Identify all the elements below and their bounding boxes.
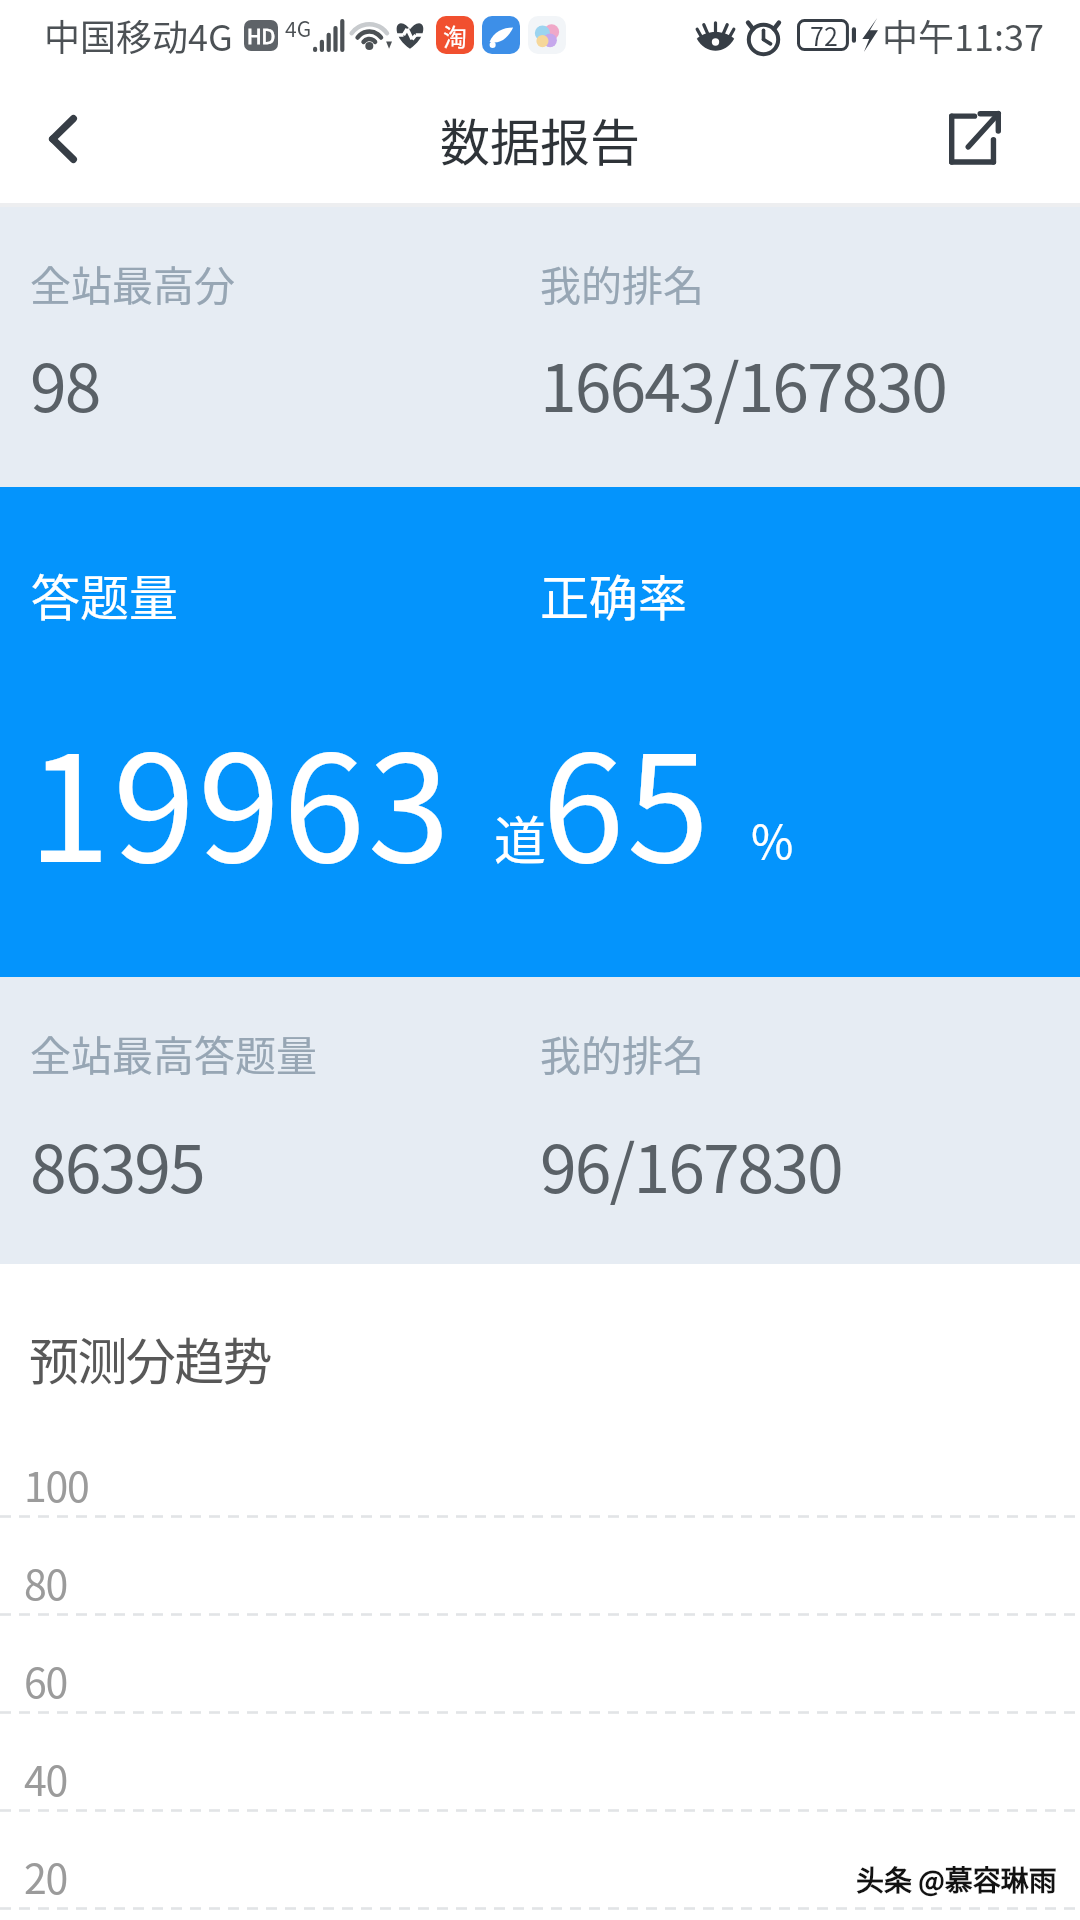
staticText: 72 bbox=[810, 17, 838, 53]
staticText: HD bbox=[247, 21, 276, 50]
staticText: 16643/167830 bbox=[540, 335, 947, 431]
staticText: 答题量 bbox=[31, 559, 179, 630]
staticText: 道 bbox=[494, 800, 547, 875]
staticText: 我的排名 bbox=[540, 253, 704, 312]
staticText: 中国移动4G bbox=[44, 9, 233, 61]
staticText: 65 bbox=[542, 690, 712, 904]
staticText: 正确率 bbox=[540, 559, 688, 630]
staticText: 全站最高答题量 bbox=[30, 1023, 317, 1082]
staticText: 头条 @慕容琳雨 bbox=[856, 1859, 1057, 1900]
staticText: 96/167830 bbox=[540, 1116, 842, 1212]
staticText: 预测分趋势 bbox=[29, 1322, 271, 1394]
staticText: 100 bbox=[24, 1454, 89, 1513]
staticText: 80 bbox=[24, 1552, 68, 1611]
staticText: 淘 bbox=[443, 18, 467, 53]
staticText: 数据报告 bbox=[440, 103, 640, 175]
staticText: 19963 bbox=[28, 690, 453, 904]
staticText: 60 bbox=[24, 1650, 68, 1709]
staticText: 全站最高分 bbox=[30, 253, 235, 312]
staticText: 20 bbox=[24, 1846, 68, 1905]
staticText: 我的排名 bbox=[540, 1023, 704, 1082]
button[interactable]: Share bbox=[949, 70, 1080, 207]
staticText: 98 bbox=[30, 335, 100, 431]
staticText: 中午11:37 bbox=[882, 9, 1044, 61]
staticText: % bbox=[751, 806, 794, 873]
staticText: 40 bbox=[24, 1748, 68, 1807]
staticText: 86395 bbox=[30, 1116, 204, 1212]
button[interactable]: Back bbox=[0, 70, 126, 207]
staticText: 4G bbox=[285, 13, 312, 43]
